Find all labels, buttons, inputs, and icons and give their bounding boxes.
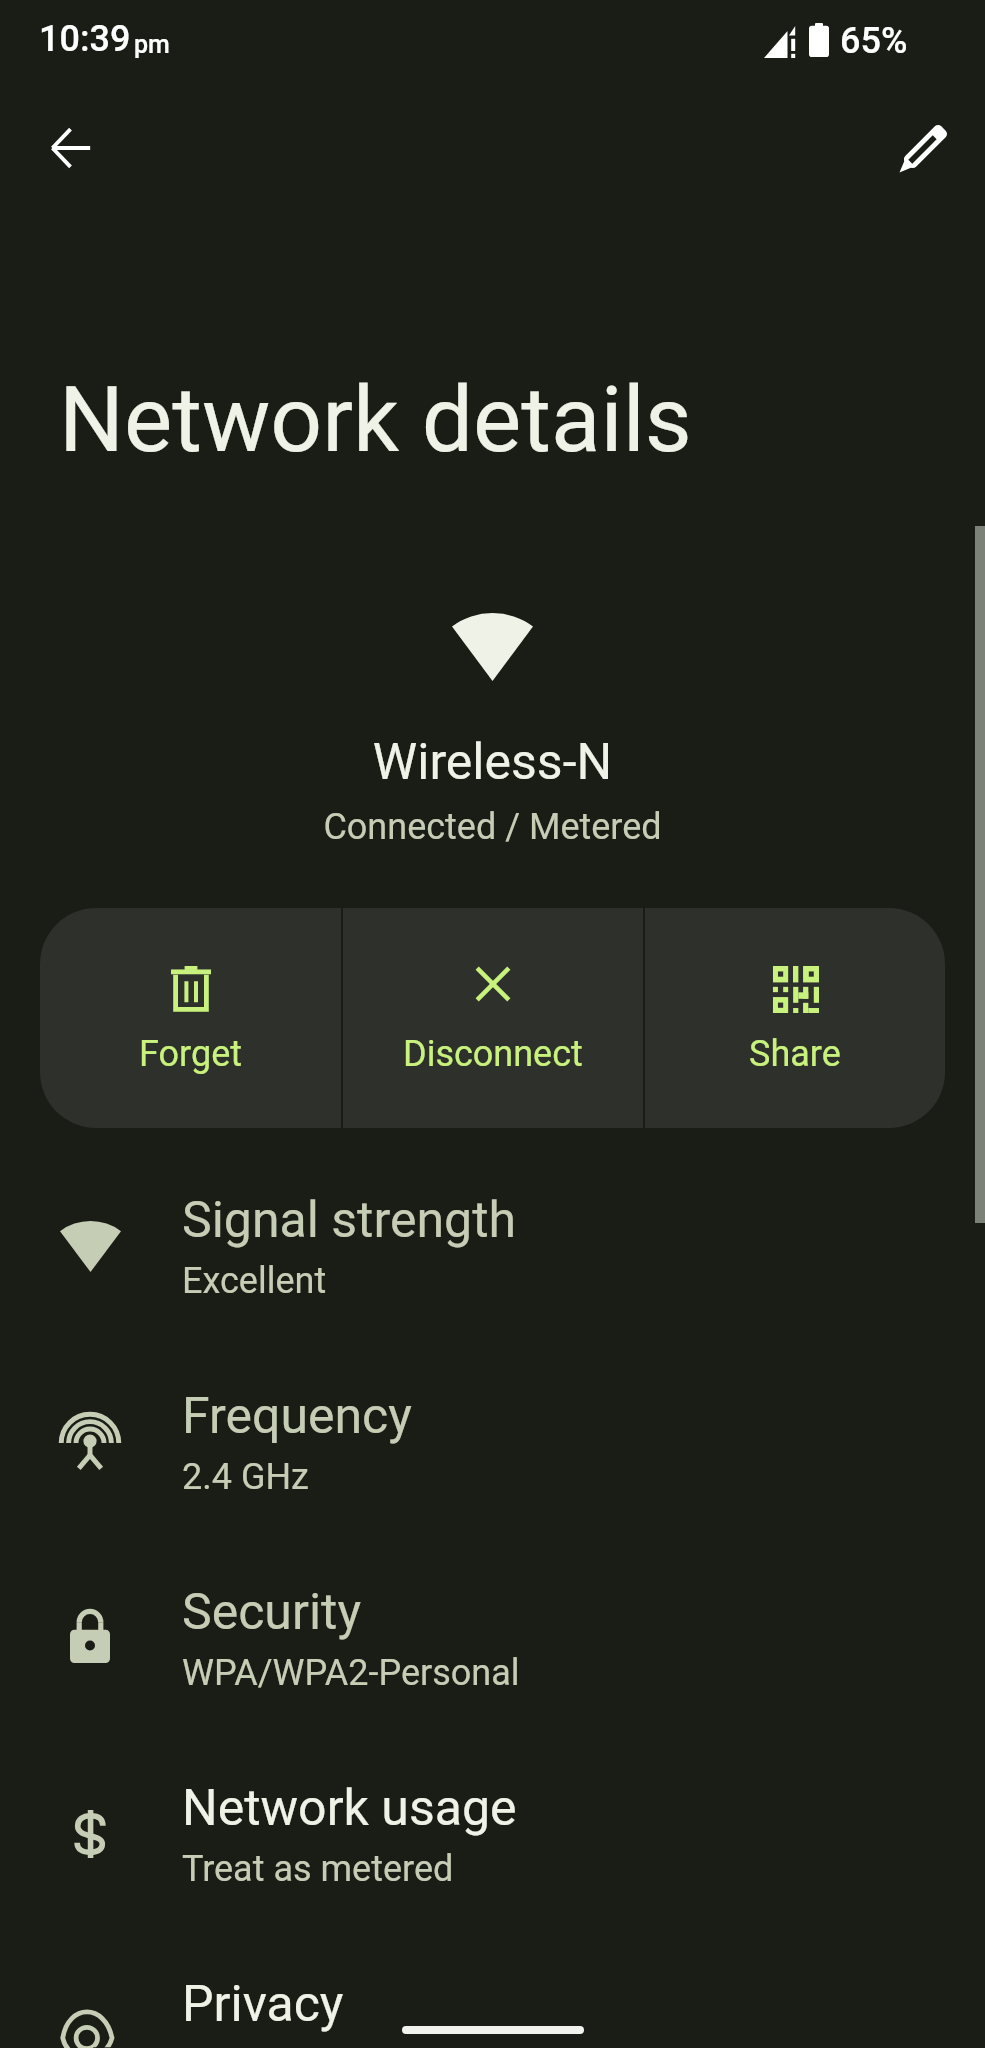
staticText: Wireless-N <box>0 733 985 792</box>
button[interactable]: Back <box>22 100 118 196</box>
button[interactable]: Frequency <box>0 1354 985 1498</box>
staticText: pm <box>134 30 170 59</box>
staticText: Excellent <box>182 1260 327 1302</box>
staticText: Security <box>182 1583 362 1642</box>
staticText: Frequency <box>182 1387 412 1446</box>
button[interactable]: Share <box>645 908 945 1128</box>
staticText: 2.4 GHz <box>182 1456 309 1498</box>
staticText: Forget <box>139 1033 243 1075</box>
staticText: 65% <box>840 20 908 62</box>
button[interactable]: Privacy <box>0 1942 985 2042</box>
staticText: 10:39 <box>39 18 131 60</box>
staticText: Network details <box>59 367 692 474</box>
staticText: WPA/WPA2-Personal <box>182 1652 520 1694</box>
button[interactable]: Edit <box>873 102 969 198</box>
button[interactable]: Network usage <box>0 1746 985 1890</box>
staticText: Privacy <box>182 1975 344 2034</box>
button[interactable]: Disconnect <box>343 908 643 1128</box>
staticText: Disconnect <box>403 1033 583 1075</box>
staticText: Treat as metered <box>182 1848 454 1890</box>
button[interactable]: Signal strength <box>0 1158 985 1302</box>
staticText: Connected / Metered <box>0 806 985 848</box>
staticText: Network usage <box>182 1779 517 1838</box>
staticText: Signal strength <box>182 1191 517 1250</box>
button[interactable]: Forget <box>40 908 341 1128</box>
button[interactable]: Security <box>0 1550 985 1694</box>
staticText: Share <box>749 1033 841 1075</box>
